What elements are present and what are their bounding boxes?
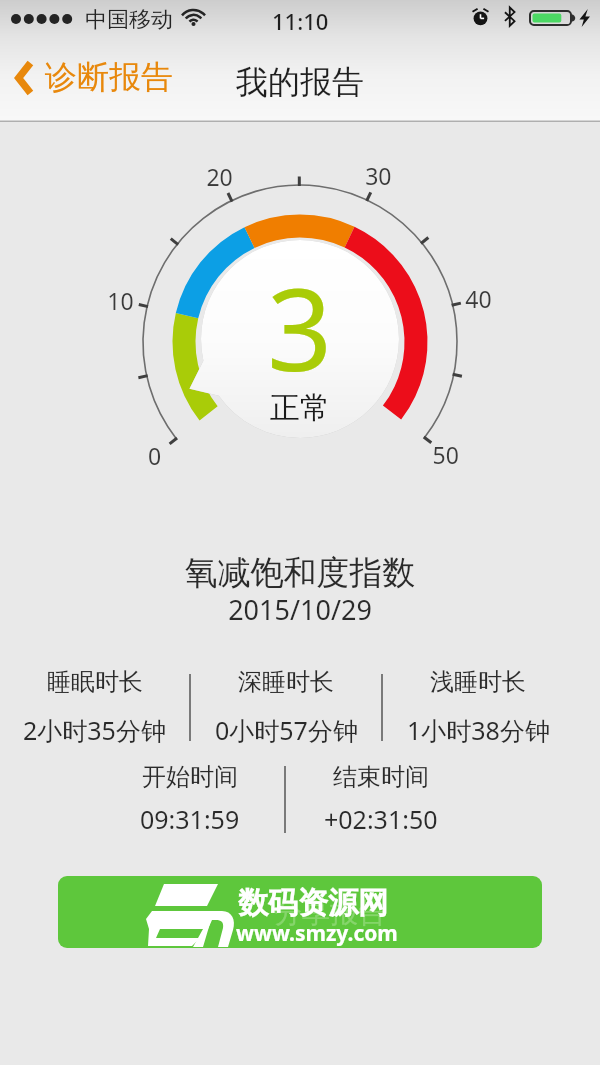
staticText: 开始时间 <box>142 762 238 792</box>
staticText: 结束时间 <box>333 762 429 792</box>
staticText: 分享报告 <box>274 895 386 930</box>
button[interactable]: 分享报告 <box>58 876 542 948</box>
staticText: 09:31:59 <box>140 802 240 836</box>
staticText: 诊断报告 <box>45 57 173 97</box>
staticText: 浅睡时长 <box>430 667 526 697</box>
staticText: 2小时35分钟 <box>23 713 166 747</box>
staticText: 睡眠时长 <box>47 667 143 697</box>
other: Back <box>14 59 35 97</box>
staticText: 深睡时长 <box>238 667 334 697</box>
staticText: 2015/10/29 <box>0 591 600 628</box>
staticText: +02:31:50 <box>324 802 438 836</box>
staticText: 1小时38分钟 <box>407 713 550 747</box>
staticText: 氧减饱和度指数 <box>0 552 600 594</box>
staticText: 0小时57分钟 <box>215 713 358 747</box>
staticText: 我的报告 <box>236 62 364 102</box>
button[interactable]: Back <box>0 52 187 104</box>
staticText: 中国移动 <box>85 6 173 34</box>
staticText: 11:10 <box>272 6 329 36</box>
